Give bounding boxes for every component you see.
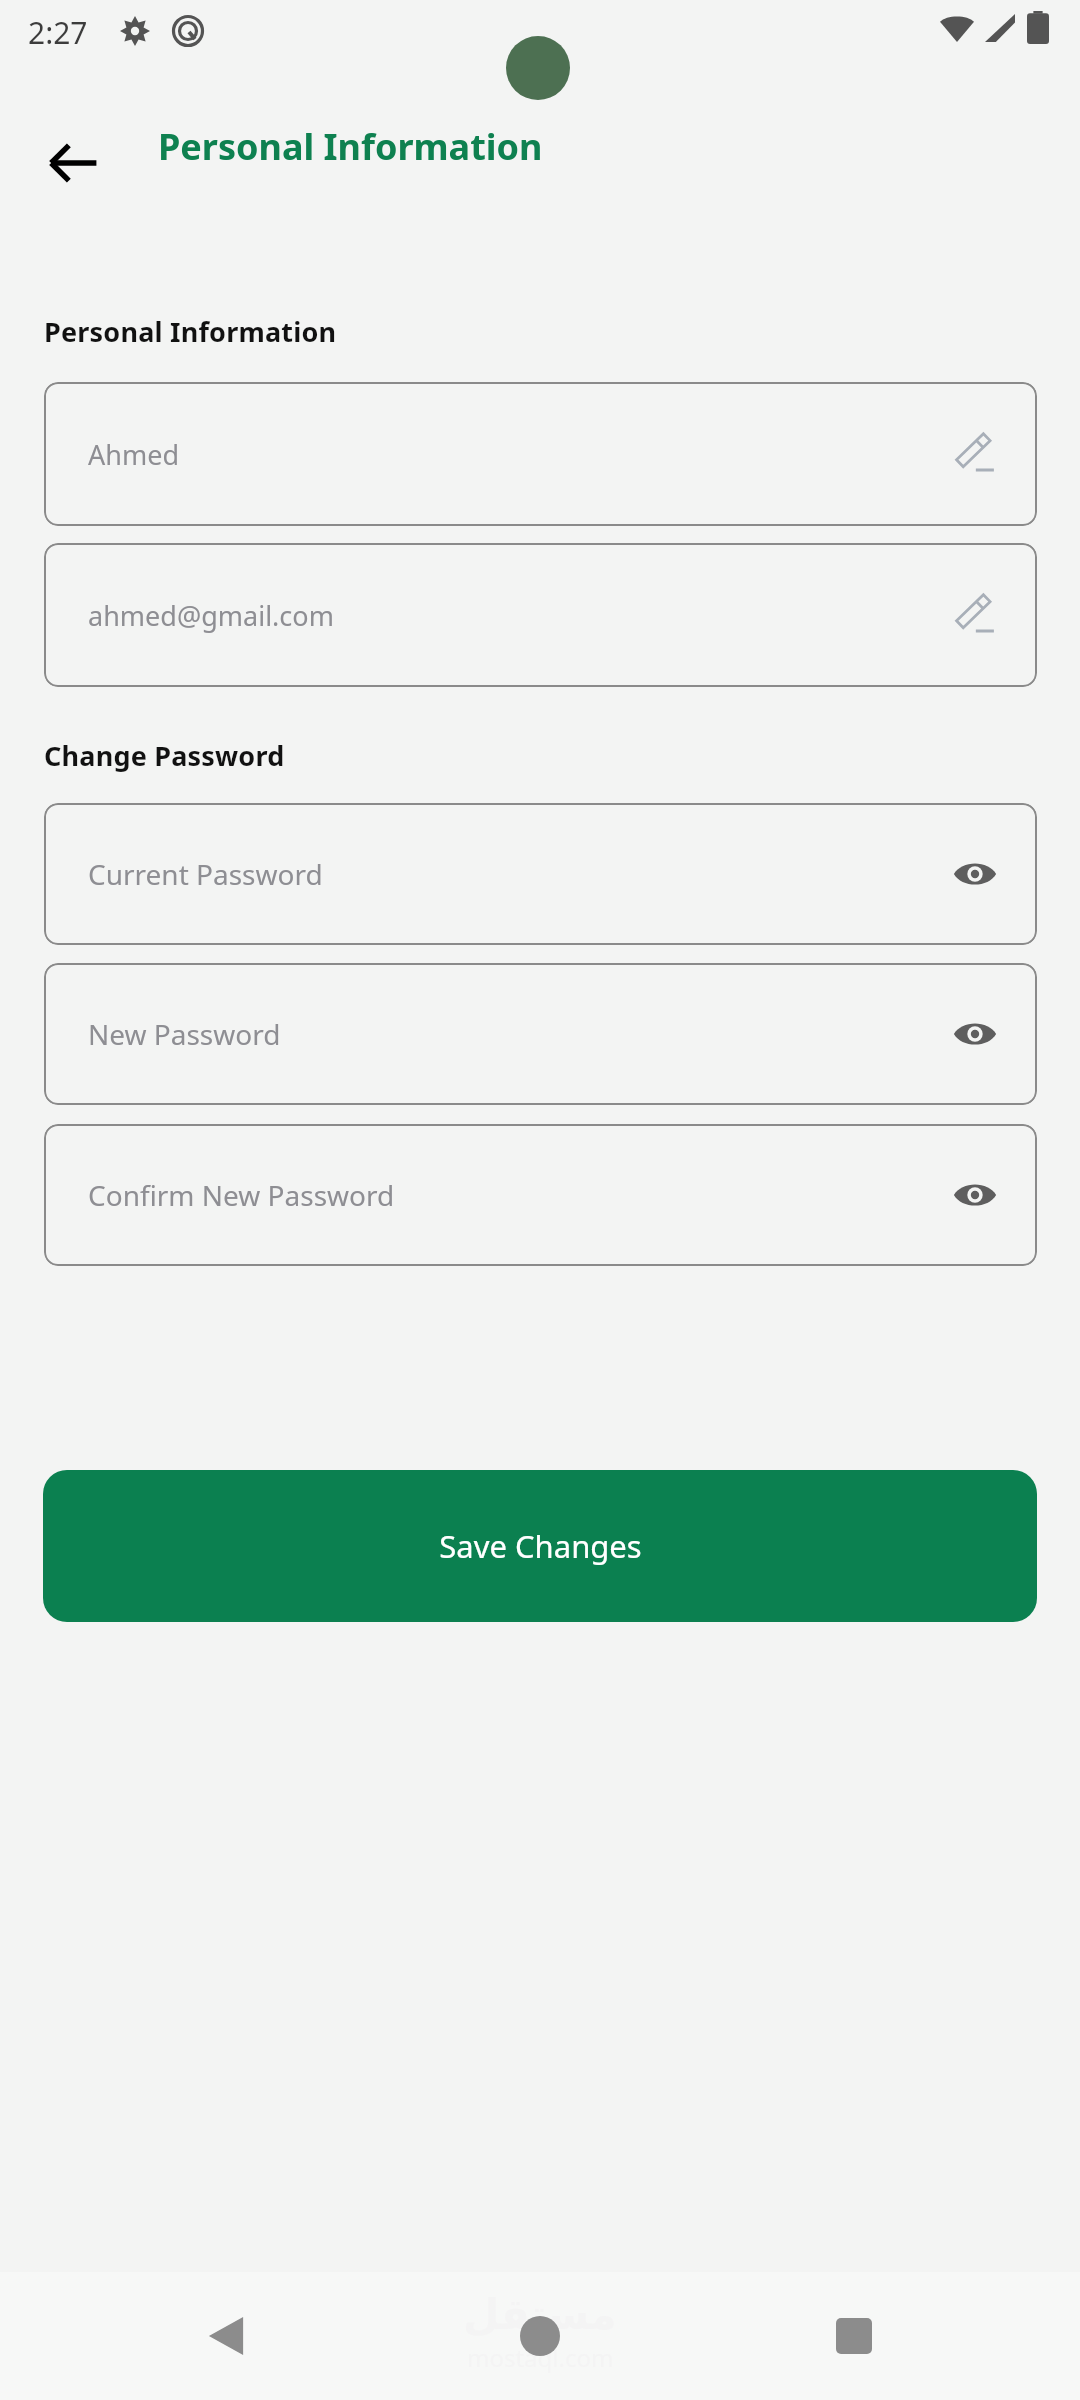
button[interactable]: Back: [30, 120, 116, 206]
button[interactable]: Home: [500, 2296, 580, 2376]
button[interactable]: Edit email: [947, 587, 1003, 643]
button[interactable]: Show new password: [947, 1006, 1003, 1062]
button[interactable]: Recent apps: [814, 2296, 894, 2376]
staticText: Confirm New Password: [88, 1176, 395, 1214]
staticText: مستقل: [463, 2290, 617, 2339]
button[interactable]: Show confirm password: [947, 1167, 1003, 1223]
staticText: Ahmed: [88, 436, 180, 473]
button[interactable]: Edit name: [947, 426, 1003, 482]
staticText: Save Changes: [439, 1525, 642, 1567]
button[interactable]: Back: [186, 2296, 266, 2376]
button[interactable]: New Password: [44, 963, 1037, 1105]
staticText: 2:27: [28, 12, 88, 53]
staticText: Personal Information: [158, 122, 543, 171]
staticText: Current Password: [88, 855, 323, 893]
staticText: Personal Information: [44, 313, 337, 350]
button[interactable]: Confirm New Password: [44, 1124, 1037, 1266]
button[interactable]: Current Password: [44, 803, 1037, 945]
staticText: Change Password: [44, 737, 285, 774]
button[interactable]: ahmed@gmail.com: [44, 543, 1037, 687]
staticText: New Password: [88, 1015, 281, 1053]
button[interactable]: Show current password: [947, 846, 1003, 902]
staticText: ahmed@gmail.com: [88, 597, 334, 634]
button[interactable]: Save Changes: [43, 1470, 1037, 1622]
button[interactable]: Ahmed: [44, 382, 1037, 526]
staticText: mostaql.com: [467, 2341, 614, 2374]
